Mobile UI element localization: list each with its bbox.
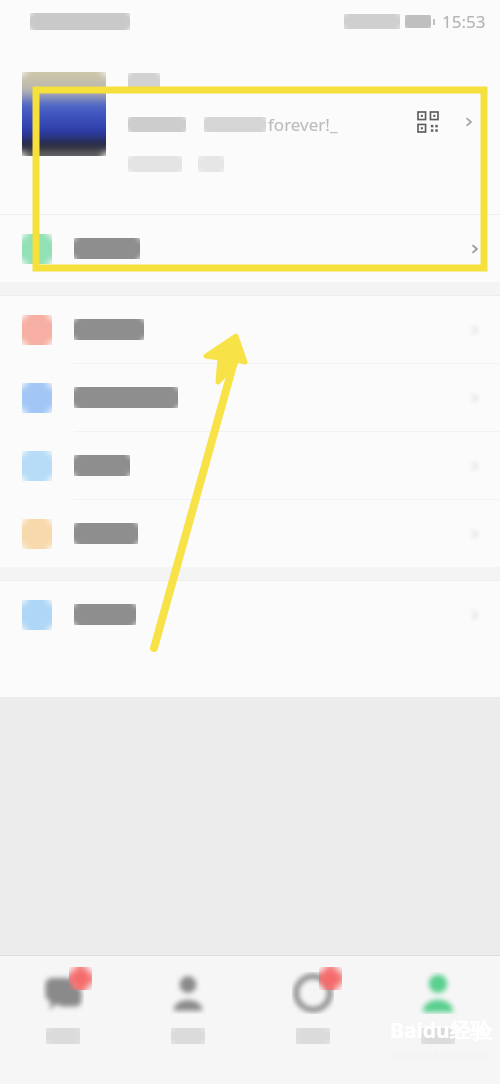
- button[interactable]: Discover: [250, 956, 375, 1084]
- staticText: 15:53: [442, 10, 486, 33]
- button[interactable]: forever!_: [0, 42, 500, 202]
- button[interactable]: Favorites: [0, 296, 500, 363]
- button[interactable]: My QR code: [408, 102, 448, 142]
- button[interactable]: Chats: [0, 956, 125, 1084]
- button[interactable]: Moments album: [0, 364, 500, 431]
- button[interactable]: Services: [0, 215, 500, 282]
- staticText: forever!_: [268, 113, 338, 136]
- button[interactable]: Settings: [0, 581, 500, 648]
- button[interactable]: Contacts: [125, 956, 250, 1084]
- button[interactable]: Me: [375, 956, 500, 1084]
- button[interactable]: Cards: [0, 432, 500, 499]
- staticText: Baidu经验: [390, 1016, 492, 1045]
- button[interactable]: Stickers: [0, 500, 500, 567]
